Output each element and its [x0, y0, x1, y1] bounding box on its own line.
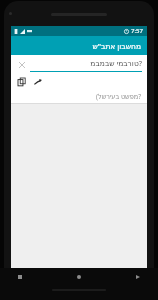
staticText: 7:57 [131, 27, 143, 35]
button[interactable]: Recents [14, 271, 26, 283]
staticText: טורבמי שבמבמ? [90, 58, 142, 68]
button[interactable]: Clear [16, 59, 27, 70]
staticText: (מפשט בעירשל? [95, 92, 141, 101]
staticText: מחשבון אתב"ש [92, 41, 141, 51]
button[interactable]: Home [73, 271, 85, 283]
button[interactable]: Back [132, 271, 144, 283]
button[interactable]: Copy [16, 76, 28, 88]
button[interactable]: טורבמי שבמבמ? [30, 55, 142, 74]
button[interactable]: Share [32, 76, 44, 88]
